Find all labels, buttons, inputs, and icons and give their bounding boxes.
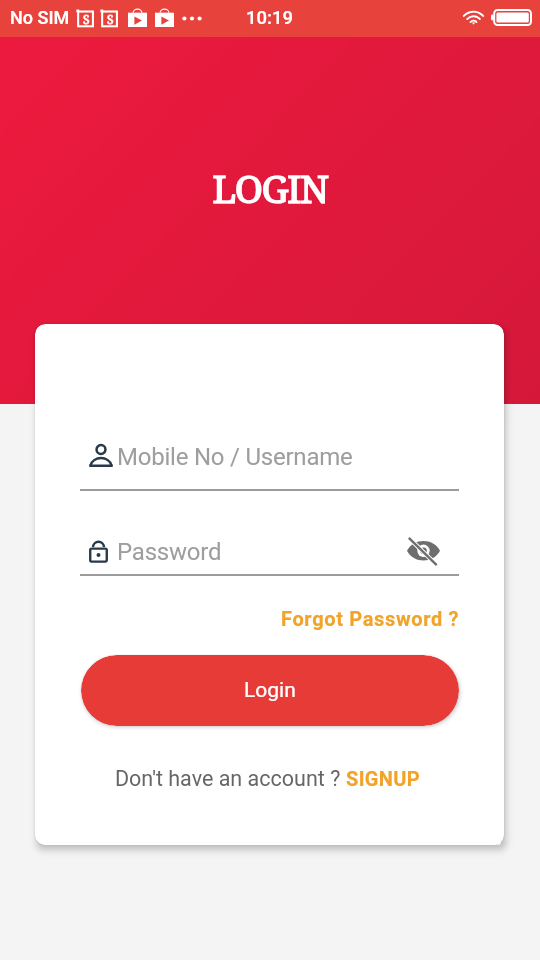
button[interactable] — [80, 528, 459, 576]
staticText: Login — [244, 678, 296, 703]
staticText: S — [107, 11, 114, 27]
staticText: Don't have an account ? — [115, 766, 346, 791]
staticText: SIGNUP — [346, 767, 421, 790]
button[interactable]: SIGNUP — [346, 767, 421, 790]
staticText: LOGIN — [0, 162, 540, 214]
staticText: 10:19 — [246, 7, 293, 29]
staticText: Mobile No / Username — [117, 443, 353, 471]
staticText: Password — [117, 538, 222, 566]
staticText: No SIM — [10, 7, 70, 28]
staticText: Forgot Password ? — [281, 607, 460, 630]
staticText: S — [83, 11, 90, 27]
button[interactable]: Forgot Password ? — [281, 607, 460, 630]
button[interactable]: Show password — [403, 535, 443, 573]
button[interactable] — [80, 432, 459, 480]
button[interactable]: Login — [81, 655, 459, 726]
